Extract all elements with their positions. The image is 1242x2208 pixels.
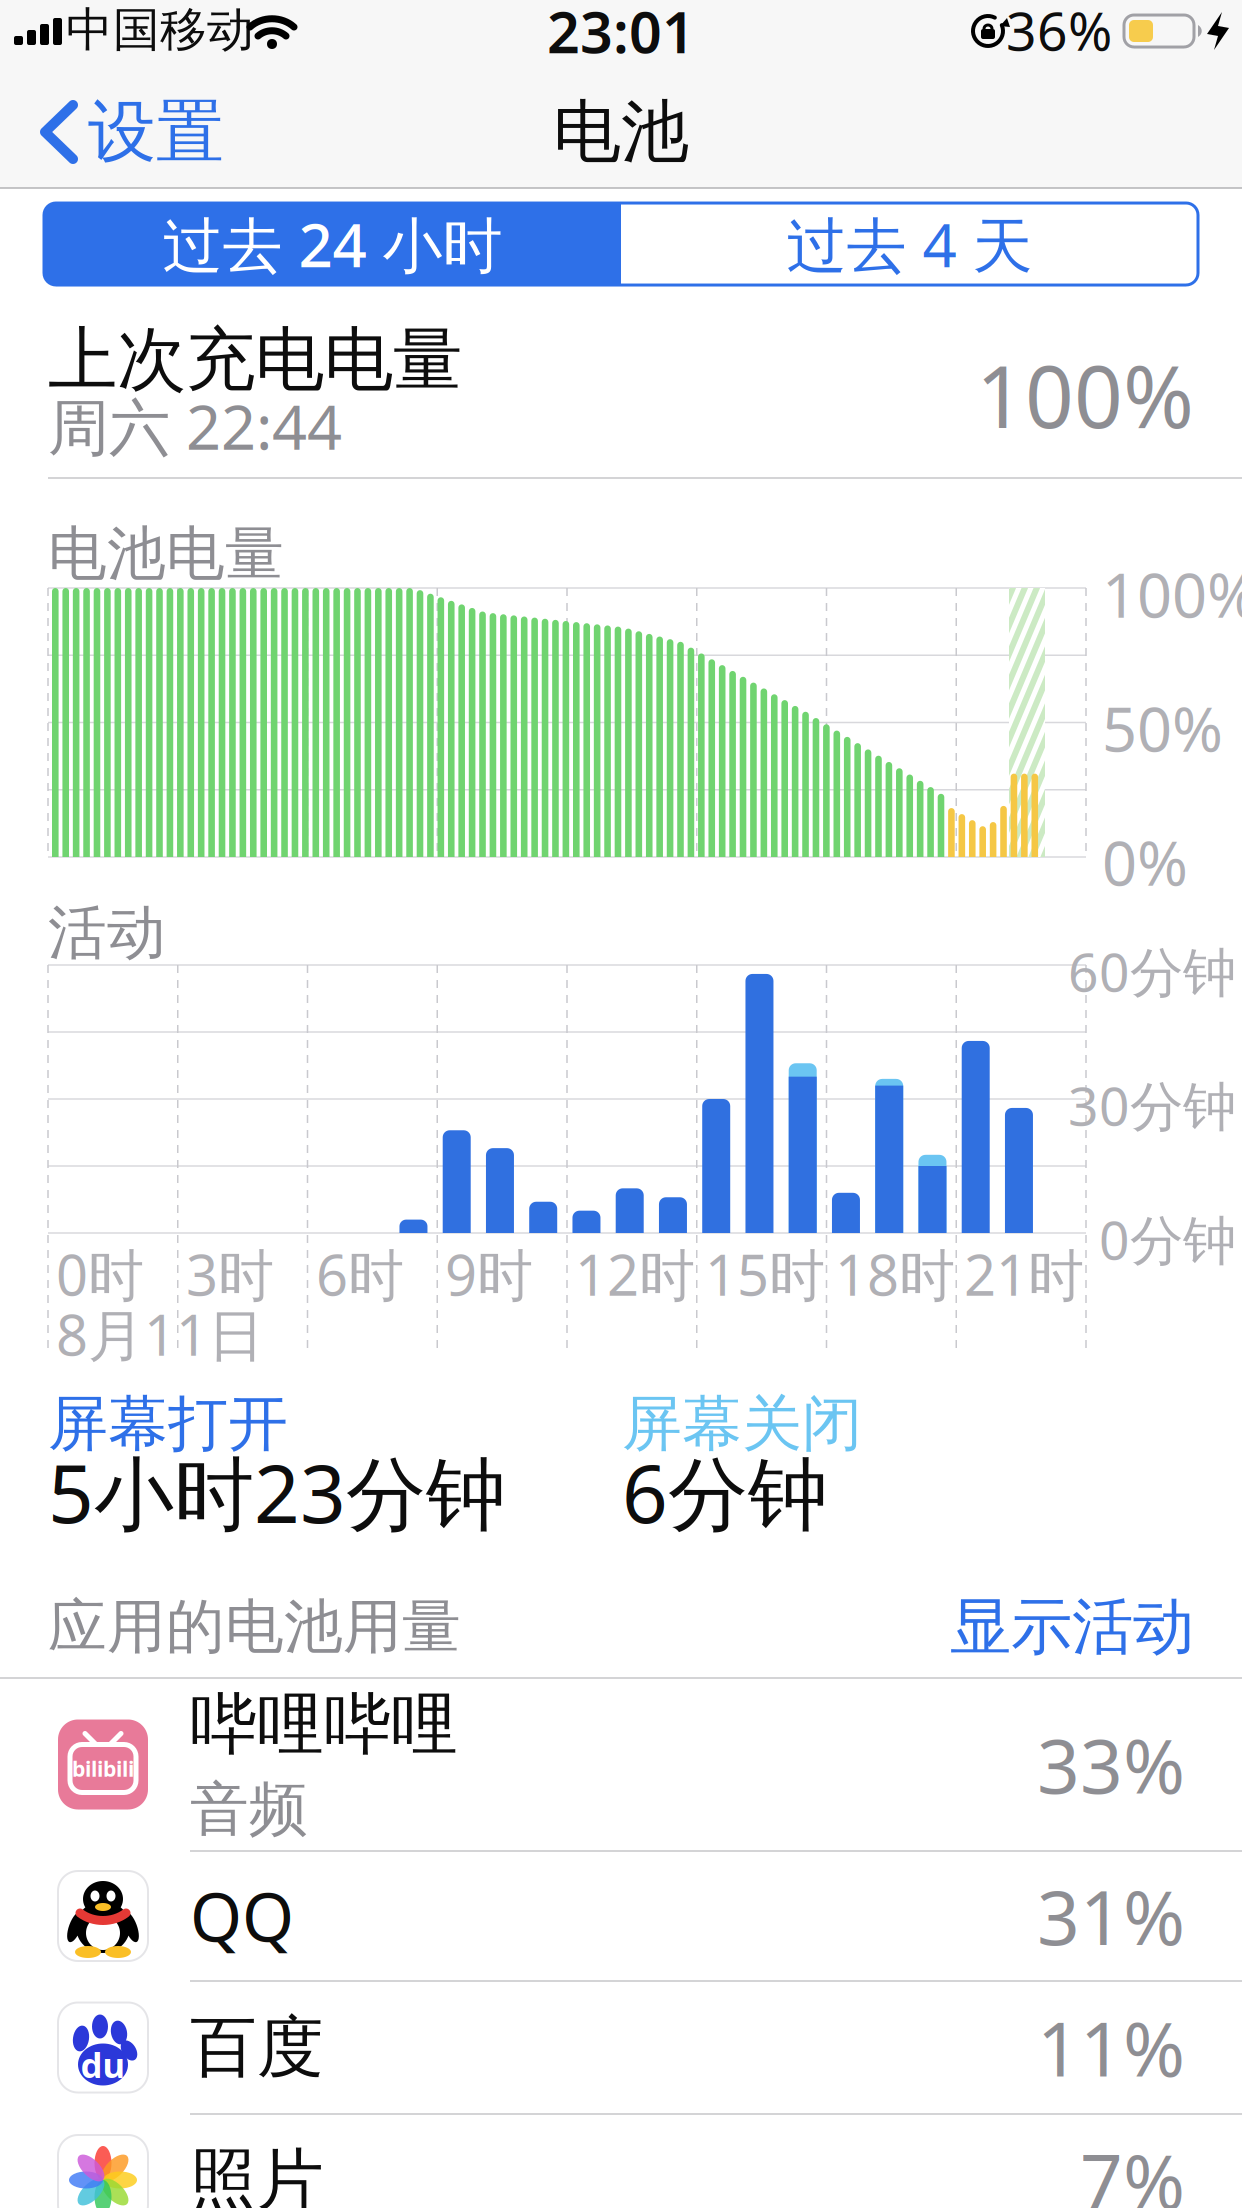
staticText: 18时	[835, 1237, 955, 1311]
button[interactable]: 设置	[28, 96, 238, 168]
staticText: du	[80, 2041, 125, 2087]
staticText: 15时	[705, 1237, 825, 1311]
staticText: 过去 24 小时	[162, 204, 502, 284]
staticText: 6分钟	[622, 1439, 828, 1545]
staticText: 100%	[1102, 553, 1242, 635]
button[interactable]: 显示活动	[0, 0, 1242, 2208]
staticText: 过去 4 天	[786, 204, 1032, 284]
staticText: 中国移动	[66, 1, 254, 59]
staticText: 6时	[316, 1237, 404, 1311]
button[interactable]: QQ	[0, 1852, 1242, 1980]
staticText: 60分钟	[1068, 936, 1236, 1006]
staticText: 周六 22:44	[48, 385, 342, 467]
button[interactable]: 过去 4 天	[621, 203, 1198, 285]
staticText: 30分钟	[1068, 1070, 1236, 1140]
staticText: 0%	[1102, 821, 1188, 903]
staticText: 5小时23分钟	[48, 1439, 506, 1545]
staticText: 屏幕关闭	[622, 1387, 862, 1461]
staticText: 36%	[1006, 0, 1112, 65]
staticText: 3时	[186, 1237, 274, 1311]
staticText: 100%	[976, 338, 1194, 452]
staticText: 哔哩哔哩	[190, 1683, 458, 1765]
staticText: 0分钟	[1099, 1204, 1236, 1274]
button[interactable]: 过去 24 小时	[44, 203, 621, 285]
staticText: 21时	[964, 1237, 1084, 1311]
staticText: 上次充电电量	[48, 317, 462, 403]
staticText: 7%	[1080, 2130, 1185, 2208]
staticText: 照片	[190, 2139, 324, 2208]
staticText: 8月11日	[56, 1297, 264, 1371]
staticText: 12时	[575, 1237, 695, 1311]
staticText: 电池	[553, 90, 689, 174]
staticText: 50%	[1102, 687, 1223, 769]
staticText: 百度	[190, 2007, 324, 2088]
staticText: 设置	[88, 90, 224, 174]
staticText: 33%	[1037, 1715, 1185, 1814]
staticText: 31%	[1037, 1866, 1185, 1966]
button[interactable]: du	[0, 1982, 1242, 2113]
staticText: QQ	[190, 1872, 294, 1960]
staticText: 屏幕打开	[48, 1387, 288, 1461]
staticText: 电池电量	[48, 518, 284, 590]
button[interactable]: bilibili	[0, 1679, 1242, 1850]
staticText: 9时	[445, 1237, 533, 1311]
staticText: 应用的电池用量	[48, 1591, 461, 1663]
button[interactable]: 照片	[0, 2116, 1242, 2208]
staticText: 音频	[190, 1773, 308, 1845]
staticText: 活动	[48, 897, 166, 969]
staticText: 0时	[56, 1237, 144, 1311]
staticText: bilibili	[72, 1754, 134, 1783]
staticText: 23:01	[547, 0, 695, 69]
staticText: 显示活动	[950, 1589, 1194, 1665]
staticText: 11%	[1037, 1998, 1185, 2097]
